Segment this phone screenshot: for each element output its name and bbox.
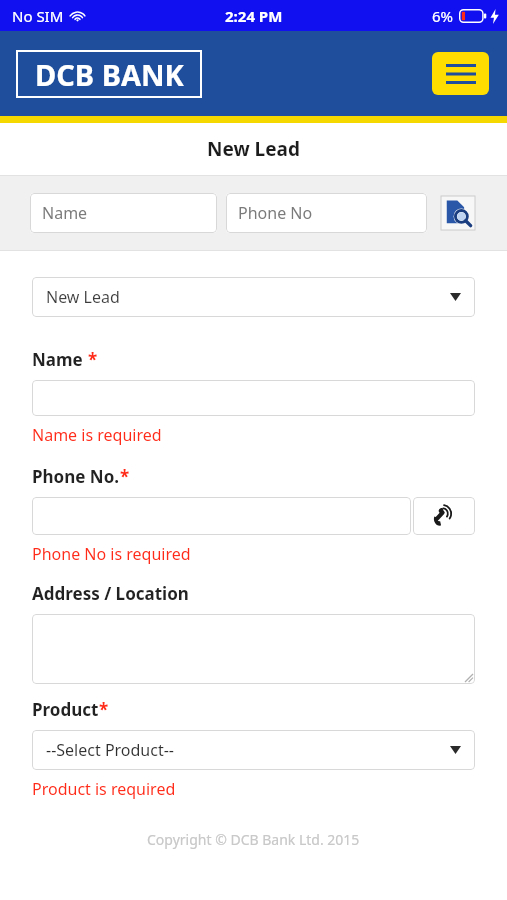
button[interactable] (32, 497, 411, 535)
staticText: * (120, 465, 130, 488)
button[interactable]: Search lead (439, 194, 477, 232)
staticText: No SIM (12, 6, 64, 26)
button[interactable]: New Lead (32, 277, 475, 317)
staticText: New Lead (207, 136, 300, 162)
staticText: 2:24 PM (225, 6, 283, 26)
button[interactable] (32, 380, 475, 416)
staticText: Address / Location (32, 582, 189, 605)
staticText: --Select Product-- (46, 739, 175, 761)
staticText: Phone No is required (32, 543, 191, 565)
staticText: * (99, 698, 109, 721)
button[interactable]: Menu (432, 52, 489, 95)
staticText: * (88, 348, 98, 371)
staticText: Product is required (32, 778, 176, 800)
staticText: Copyright © DCB Bank Ltd. 2015 (147, 830, 360, 849)
staticText: DCB BANK (35, 55, 184, 94)
button[interactable]: DCB BANK (16, 50, 202, 98)
button[interactable] (32, 614, 475, 684)
staticText: 6% (432, 6, 454, 26)
staticText: Name (32, 348, 88, 371)
staticText: Phone No. (32, 465, 120, 488)
button[interactable]: Name (30, 193, 217, 233)
button[interactable]: --Select Product-- (32, 730, 475, 770)
staticText: Name is required (32, 424, 162, 446)
staticText: Product (32, 698, 99, 721)
staticText: New Lead (46, 286, 120, 308)
button[interactable]: Phone No (226, 193, 427, 233)
staticText: Name (42, 202, 88, 224)
button[interactable]: Call (413, 497, 475, 535)
staticText: Phone No (238, 202, 313, 224)
